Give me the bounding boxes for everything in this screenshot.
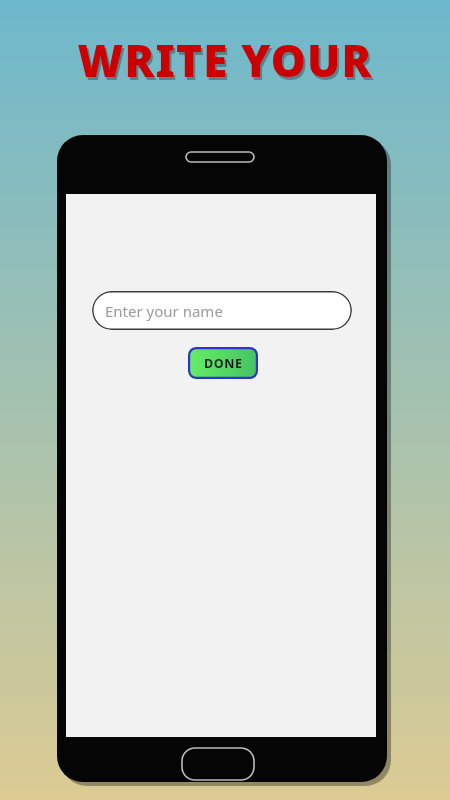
staticText: Enter your name (105, 301, 223, 321)
staticText: DONE (204, 355, 243, 372)
staticText: WRITE YOUR NAME (22, 30, 428, 90)
button[interactable]: Done (188, 347, 258, 379)
button[interactable]: Enter your name (92, 291, 352, 330)
staticText: WRITE YOUR NAME (24, 33, 430, 93)
